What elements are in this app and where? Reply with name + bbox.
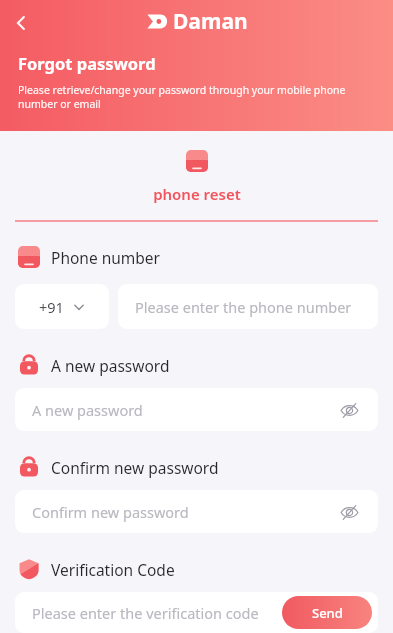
- staticText: A new password: [32, 400, 143, 420]
- button[interactable]: A new password: [15, 388, 378, 431]
- button[interactable]: Show password: [337, 500, 361, 524]
- staticText: Phone number: [51, 247, 161, 268]
- button[interactable]: Show password: [337, 398, 361, 422]
- staticText: Confirm new password: [51, 457, 219, 478]
- staticText: Send: [312, 604, 343, 622]
- staticText: A new password: [51, 355, 170, 376]
- button[interactable]: +91: [15, 284, 109, 329]
- staticText: Please retrieve/change your password thr…: [18, 83, 375, 111]
- staticText: phone reset: [153, 184, 241, 204]
- staticText: Daman: [173, 7, 248, 36]
- button[interactable]: Confirm new password: [15, 490, 378, 533]
- staticText: Forgot password: [18, 52, 156, 74]
- staticText: Please enter the phone number: [135, 297, 352, 317]
- button[interactable]: phone reset: [123, 148, 271, 206]
- staticText: Verification Code: [51, 559, 175, 580]
- staticText: Confirm new password: [32, 502, 189, 522]
- button[interactable]: Send: [282, 596, 372, 629]
- button[interactable]: Please enter the phone number: [118, 284, 378, 329]
- button[interactable]: Back: [4, 6, 38, 40]
- staticText: Please enter the verification code: [32, 603, 259, 623]
- staticText: +91: [39, 297, 64, 317]
